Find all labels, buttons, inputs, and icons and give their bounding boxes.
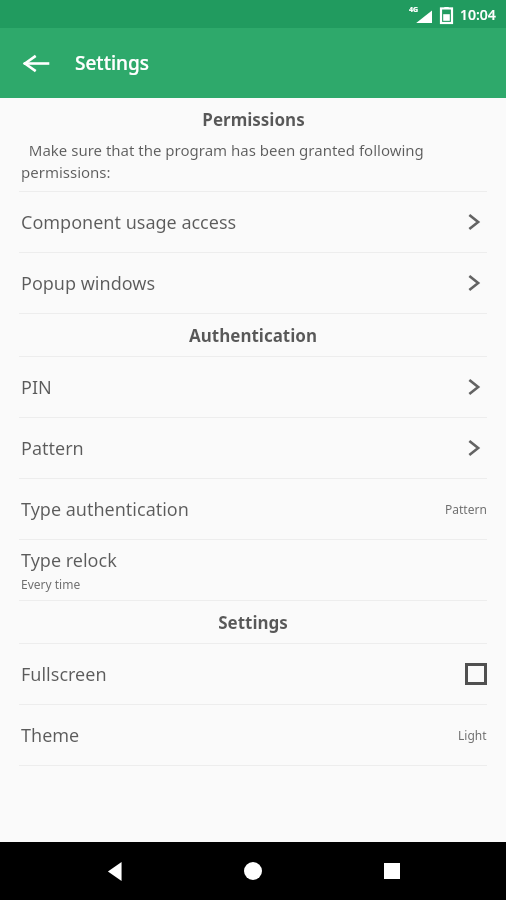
- button[interactable]: Type relock: [0, 540, 506, 600]
- staticText: Every time: [21, 576, 81, 592]
- button[interactable]: Home: [229, 847, 277, 895]
- button[interactable]: Back: [91, 847, 139, 895]
- staticText: Authentication: [189, 324, 317, 347]
- button[interactable]: Component usage access: [0, 192, 506, 252]
- staticText: Type authentication: [21, 497, 189, 522]
- staticText: Settings: [75, 50, 149, 76]
- staticText: Light: [458, 727, 487, 743]
- staticText: Permissions: [202, 108, 305, 131]
- button[interactable]: Recents: [368, 847, 416, 895]
- staticText: Popup windows: [21, 271, 156, 296]
- button[interactable]: Pattern: [0, 418, 506, 478]
- button[interactable]: Type authentication: [0, 479, 506, 539]
- staticText: Pattern: [445, 501, 487, 517]
- button[interactable]: Theme: [0, 705, 506, 765]
- staticText: 10:04: [460, 5, 496, 24]
- button[interactable]: Back: [14, 41, 58, 85]
- staticText: PIN: [21, 375, 52, 400]
- staticText: Theme: [21, 723, 80, 748]
- staticText: Settings: [218, 611, 288, 634]
- staticText: 4G: [409, 5, 419, 15]
- staticText: Type relock: [21, 548, 117, 573]
- staticText: Component usage access: [21, 210, 237, 235]
- button[interactable]: Popup windows: [0, 253, 506, 313]
- button[interactable]: PIN: [0, 357, 506, 417]
- button[interactable]: Fullscreen: [0, 644, 506, 704]
- staticText: Make sure that the program has been gran…: [21, 140, 485, 183]
- staticText: Fullscreen: [21, 662, 107, 687]
- staticText: Pattern: [21, 436, 84, 461]
